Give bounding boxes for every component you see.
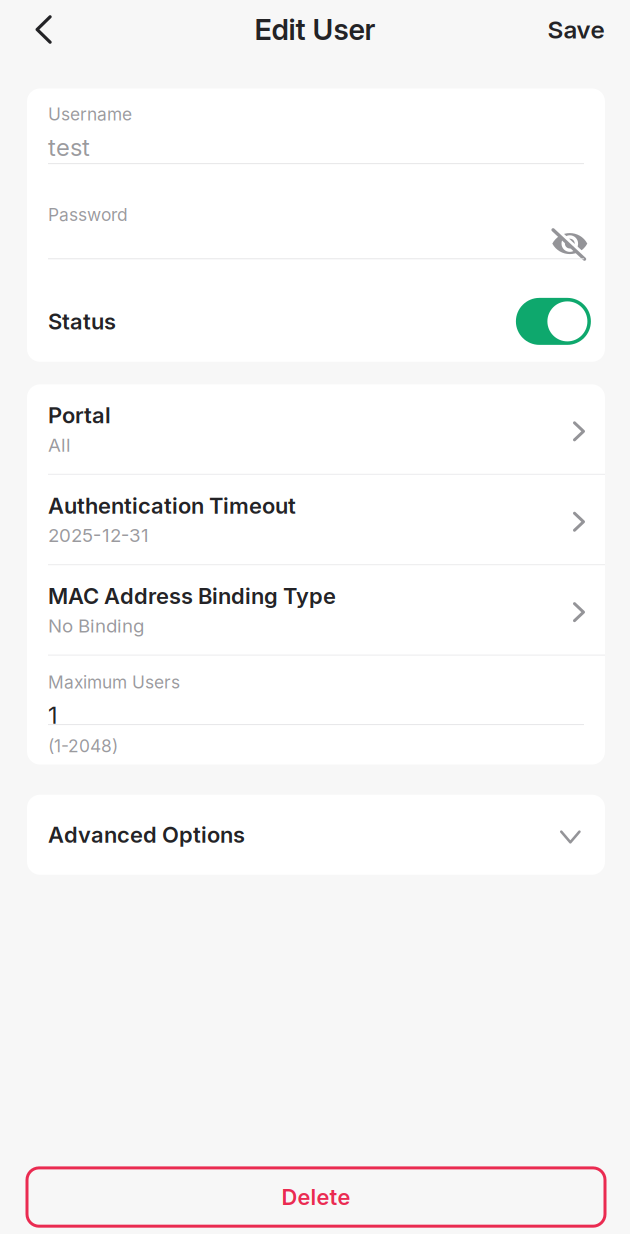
staticText: (1-2048) (48, 736, 118, 757)
staticText: Portal (48, 402, 111, 429)
button[interactable]: Authentication Timeout (27, 475, 605, 564)
staticText: MAC Address Binding Type (48, 583, 336, 609)
staticText: All (48, 434, 71, 456)
staticText: Save (547, 15, 604, 44)
button[interactable]: Status (516, 298, 591, 345)
button[interactable]: Delete (27, 1168, 605, 1226)
staticText: Maximum Users (48, 672, 180, 693)
staticText: No Binding (48, 614, 144, 637)
staticText: 1 (48, 701, 58, 730)
staticText: test (48, 133, 90, 162)
staticText: Status (48, 308, 116, 335)
button[interactable]: MAC Address Binding Type (27, 565, 605, 655)
staticText: Username (48, 104, 132, 125)
button[interactable]: Back (0, 0, 76, 59)
staticText: Edit User (254, 12, 375, 47)
staticText: Delete (281, 1184, 350, 1210)
button[interactable]: Advanced Options (27, 795, 605, 875)
button[interactable]: Save (525, 0, 630, 59)
staticText: Password (48, 204, 128, 225)
staticText: 2025-12-31 (48, 524, 149, 547)
staticText: Authentication Timeout (48, 492, 296, 519)
staticText: Advanced Options (48, 821, 245, 848)
button[interactable]: Portal (27, 384, 605, 474)
